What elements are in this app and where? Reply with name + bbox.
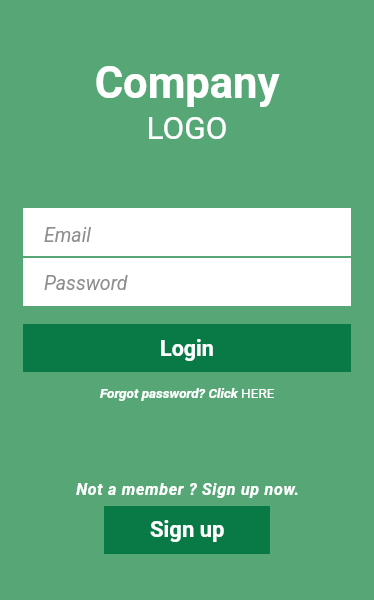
button[interactable]: Password input field [23,258,351,306]
staticText: Sign up [150,517,225,543]
button[interactable]: Forgot password? Click HERE [100,385,275,401]
staticText: Login [160,336,214,361]
staticText: LOGO [0,110,374,147]
staticText: Password [44,272,128,295]
button[interactable]: Sign up [104,506,270,554]
button[interactable]: Login [23,324,351,372]
staticText: Not a member ? Sign up now. [1,480,374,499]
button[interactable]: Email input field [23,208,351,256]
staticText: Company [0,58,374,109]
staticText: Forgot password? Click HERE [100,385,275,401]
staticText: Email [44,224,91,247]
